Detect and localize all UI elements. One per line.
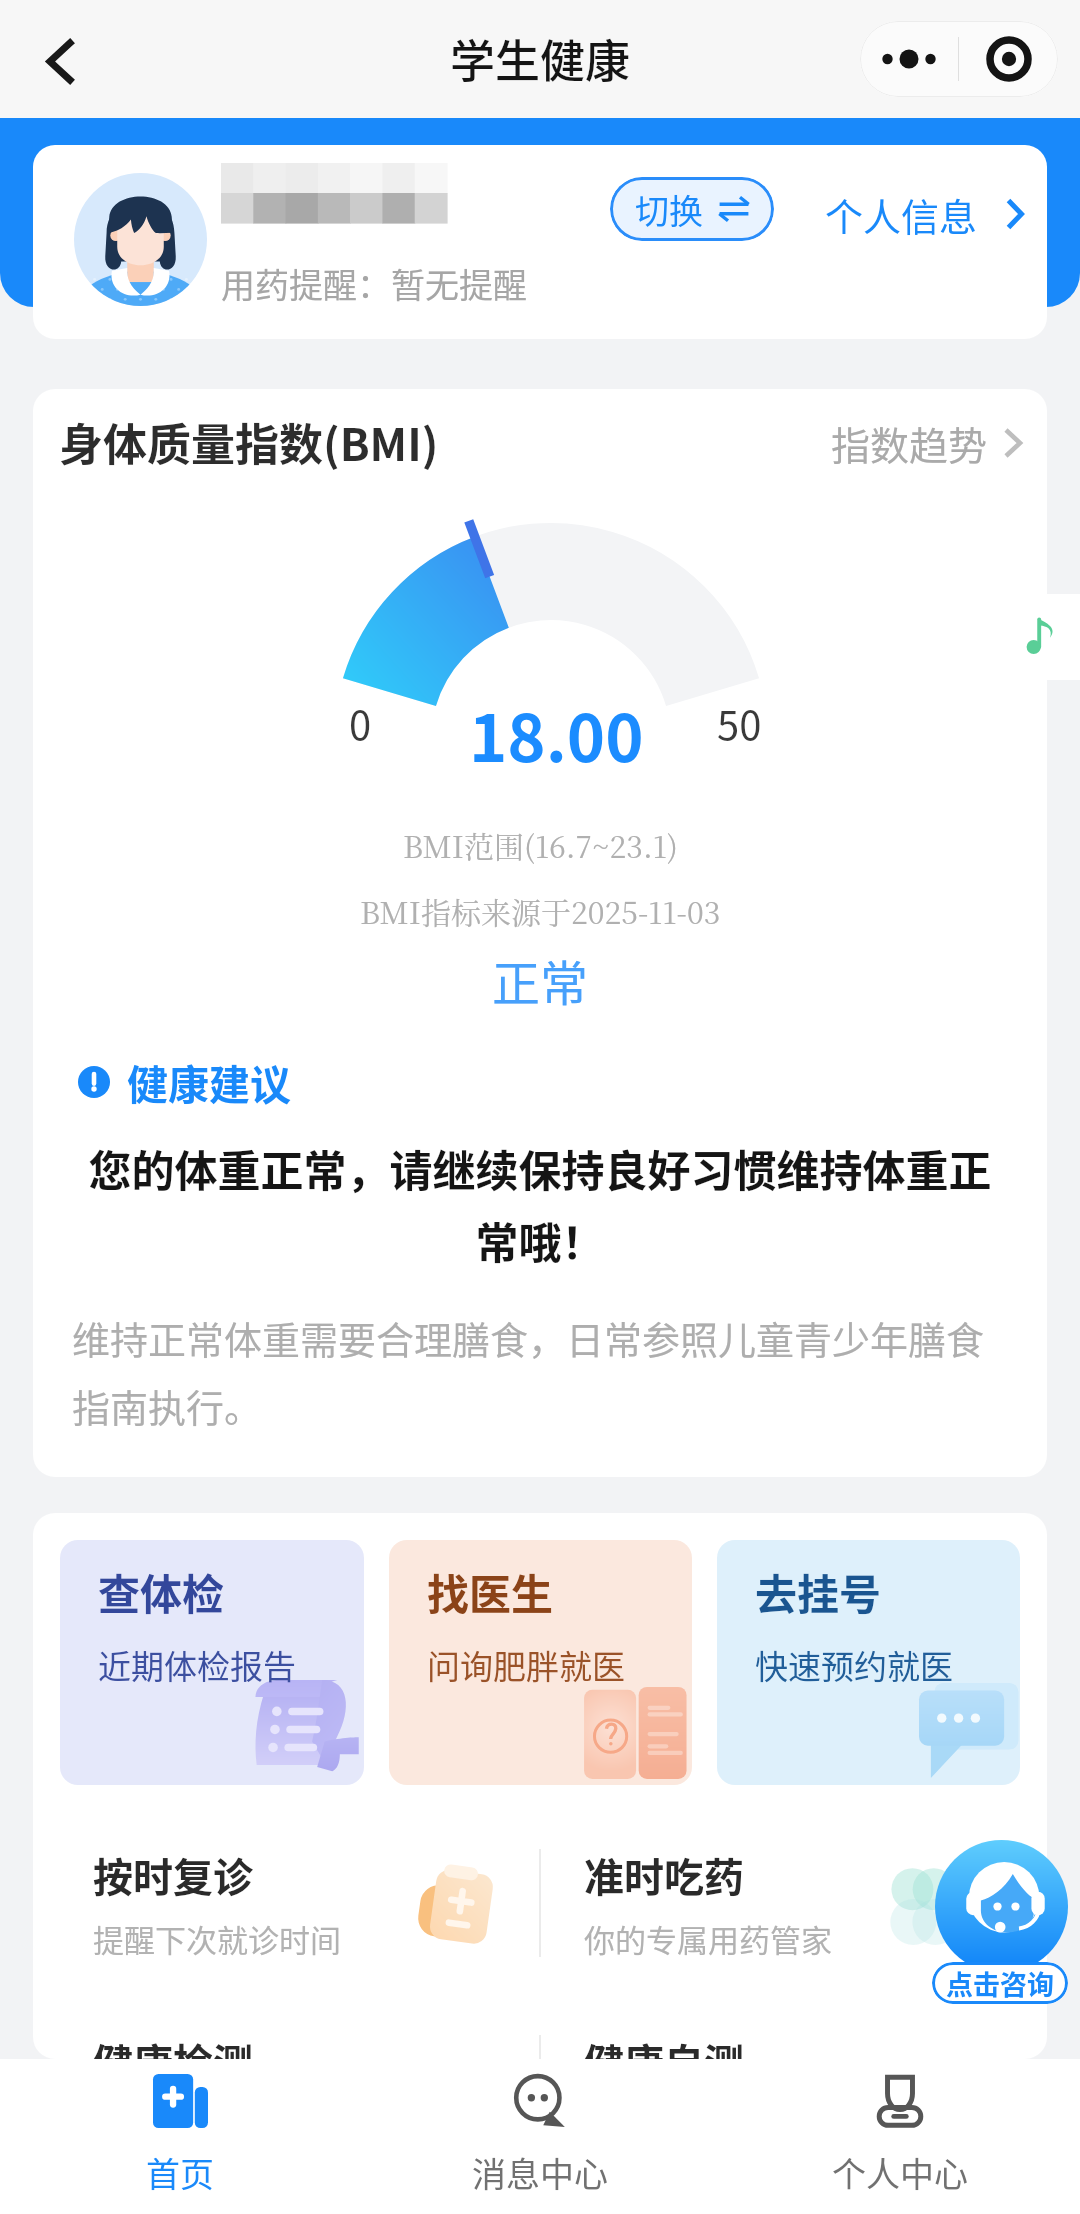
- staticText: 首页: [146, 2148, 214, 2197]
- button[interactable]: 指数趋势: [831, 415, 1022, 471]
- button[interactable]: Music: [1002, 594, 1080, 680]
- staticText: 按时复诊: [93, 1846, 253, 1904]
- button[interactable]: 消息中心: [360, 2059, 720, 2214]
- staticText: 快速预约就医: [755, 1641, 953, 1689]
- button[interactable]: 查体检: [60, 1540, 364, 1785]
- button[interactable]: 个人中心: [720, 2059, 1080, 2214]
- button[interactable]: Back: [16, 16, 102, 102]
- staticText: BMI指标来源于2025-11-03: [360, 889, 721, 932]
- button[interactable]: 去挂号: [717, 1540, 1020, 1785]
- button[interactable]: 首页: [0, 2059, 360, 2214]
- staticText: 切换: [635, 185, 703, 234]
- staticText: 个人信息: [825, 187, 978, 242]
- staticText: 个人中心: [832, 2148, 968, 2197]
- button[interactable]: Close mini program: [959, 21, 1058, 97]
- staticText: 健康自测: [584, 2032, 744, 2059]
- staticText: 健康检测: [93, 2032, 253, 2059]
- staticText: 维持正常体重需要合理膳食，日常参照儿童青少年膳食指南执行。: [72, 1310, 1008, 1433]
- button[interactable]: 健康检测: [33, 2014, 539, 2059]
- staticText: 提醒下次就诊时间: [93, 1916, 341, 1961]
- staticText: 查体检: [98, 1561, 225, 1622]
- staticText: 您的体重正常，请继续保持良好习惯维持体重正常哦！: [71, 1137, 1009, 1272]
- button[interactable]: 个人信息: [825, 179, 1024, 249]
- staticText: 你的专属用药管家: [584, 1916, 832, 1961]
- button[interactable]: 按时复诊: [33, 1828, 539, 1978]
- button[interactable]: 用药提醒：暂无提醒: [33, 145, 1047, 339]
- staticText: 指数趋势: [831, 415, 988, 471]
- button[interactable]: Contact customer service: [935, 1840, 1068, 1973]
- staticText: 正常: [492, 945, 589, 1015]
- staticText: 用药提醒：暂无提醒: [221, 259, 527, 308]
- button[interactable]: 准时吃药: [541, 1828, 1047, 1978]
- staticText: 近期体检报告: [98, 1641, 296, 1689]
- staticText: 点击咨询: [946, 1964, 1054, 2003]
- staticText: 身体质量指数(BMI): [59, 410, 439, 474]
- staticText: 健康建议: [127, 1052, 291, 1111]
- staticText: 0: [349, 694, 372, 752]
- staticText: 18.00: [469, 687, 644, 781]
- button[interactable]: 点击咨询: [932, 1962, 1068, 2004]
- button[interactable]: 切换: [610, 177, 774, 241]
- staticText: 准时吃药: [584, 1846, 744, 1904]
- staticText: 50: [717, 694, 762, 752]
- staticText: 去挂号: [755, 1561, 882, 1622]
- staticText: 找医生: [427, 1561, 554, 1622]
- button[interactable]: More options: [860, 21, 958, 97]
- staticText: 问询肥胖就医: [427, 1641, 625, 1689]
- staticText: 学生健康: [450, 26, 631, 91]
- staticText: BMI范围(16.7~23.1): [403, 823, 678, 866]
- button[interactable]: 健康自测: [541, 2014, 1047, 2059]
- staticText: 消息中心: [472, 2148, 608, 2197]
- button[interactable]: 找医生: [389, 1540, 692, 1785]
